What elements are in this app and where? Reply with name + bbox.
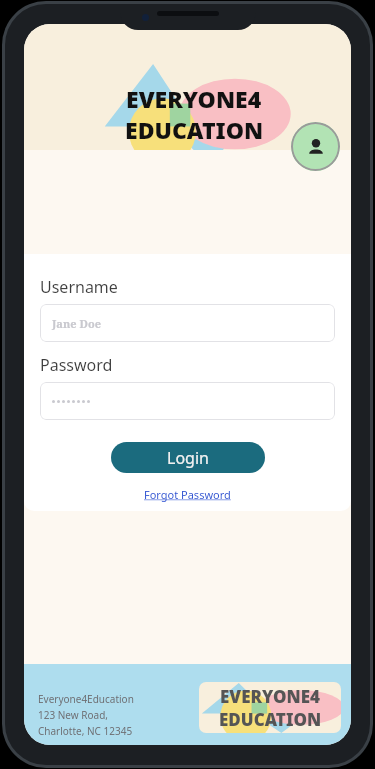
button[interactable]: Account profile: [291, 122, 340, 171]
button[interactable]: Forgot Password: [140, 483, 235, 506]
button[interactable]: [40, 382, 335, 420]
button[interactable]: Login: [111, 442, 265, 473]
staticText: Everyone4Education: [38, 692, 134, 706]
staticText: Username: [40, 276, 118, 298]
staticText: Login: [167, 447, 209, 469]
button[interactable]: EVERYONE4: [199, 682, 341, 733]
staticText: EDUCATION: [219, 708, 322, 731]
staticText: EDUCATION: [125, 114, 264, 145]
staticText: EVERYONE4: [220, 685, 320, 708]
button[interactable]: Jane Doe: [40, 304, 335, 342]
staticText: Charlotte, NC 12345: [38, 724, 133, 738]
staticText: Password: [40, 354, 113, 376]
staticText: EVERYONE4: [126, 83, 262, 114]
staticText: Forgot Password: [144, 487, 231, 502]
staticText: 123 New Road,: [38, 708, 108, 722]
staticText: Jane Doe: [52, 316, 101, 331]
